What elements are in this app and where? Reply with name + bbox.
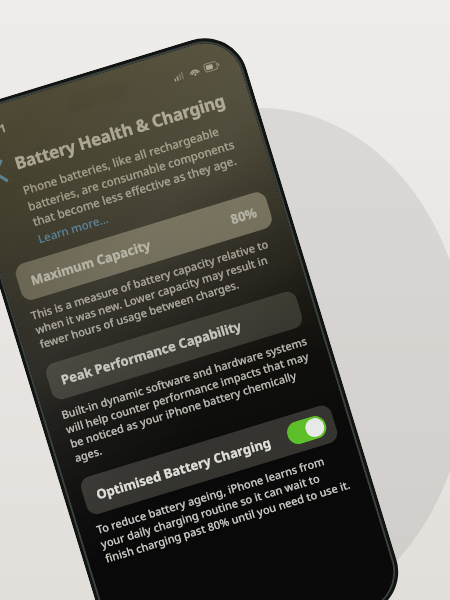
- staticText: This is a measure of battery capacity re…: [29, 234, 287, 351]
- staticText: Maximum Capacity: [28, 235, 153, 289]
- staticText: 3:31: [0, 120, 8, 140]
- button[interactable]: Peak Performance Capability: [43, 289, 305, 402]
- button[interactable]: Optimised Battery Charging: [78, 403, 340, 517]
- staticText: Battery Health & Charging: [12, 89, 228, 175]
- staticText: To reduce battery ageing, iPhone learns …: [94, 448, 352, 566]
- staticText: Learn more…: [36, 211, 110, 247]
- staticText: 80%: [228, 203, 259, 228]
- staticText: Built-in dynamic software and hardware s…: [59, 333, 322, 465]
- staticText: Phone batteries, like all rechargeable b…: [21, 117, 251, 229]
- button[interactable]: Optimised Battery Charging toggle, on: [284, 413, 329, 447]
- button[interactable]: Back: [0, 151, 21, 193]
- button[interactable]: Learn more…: [36, 211, 110, 247]
- button[interactable]: Maximum Capacity: [13, 190, 275, 302]
- staticText: Optimised Battery Charging: [94, 433, 273, 503]
- staticText: Peak Performance Capability: [59, 316, 244, 389]
